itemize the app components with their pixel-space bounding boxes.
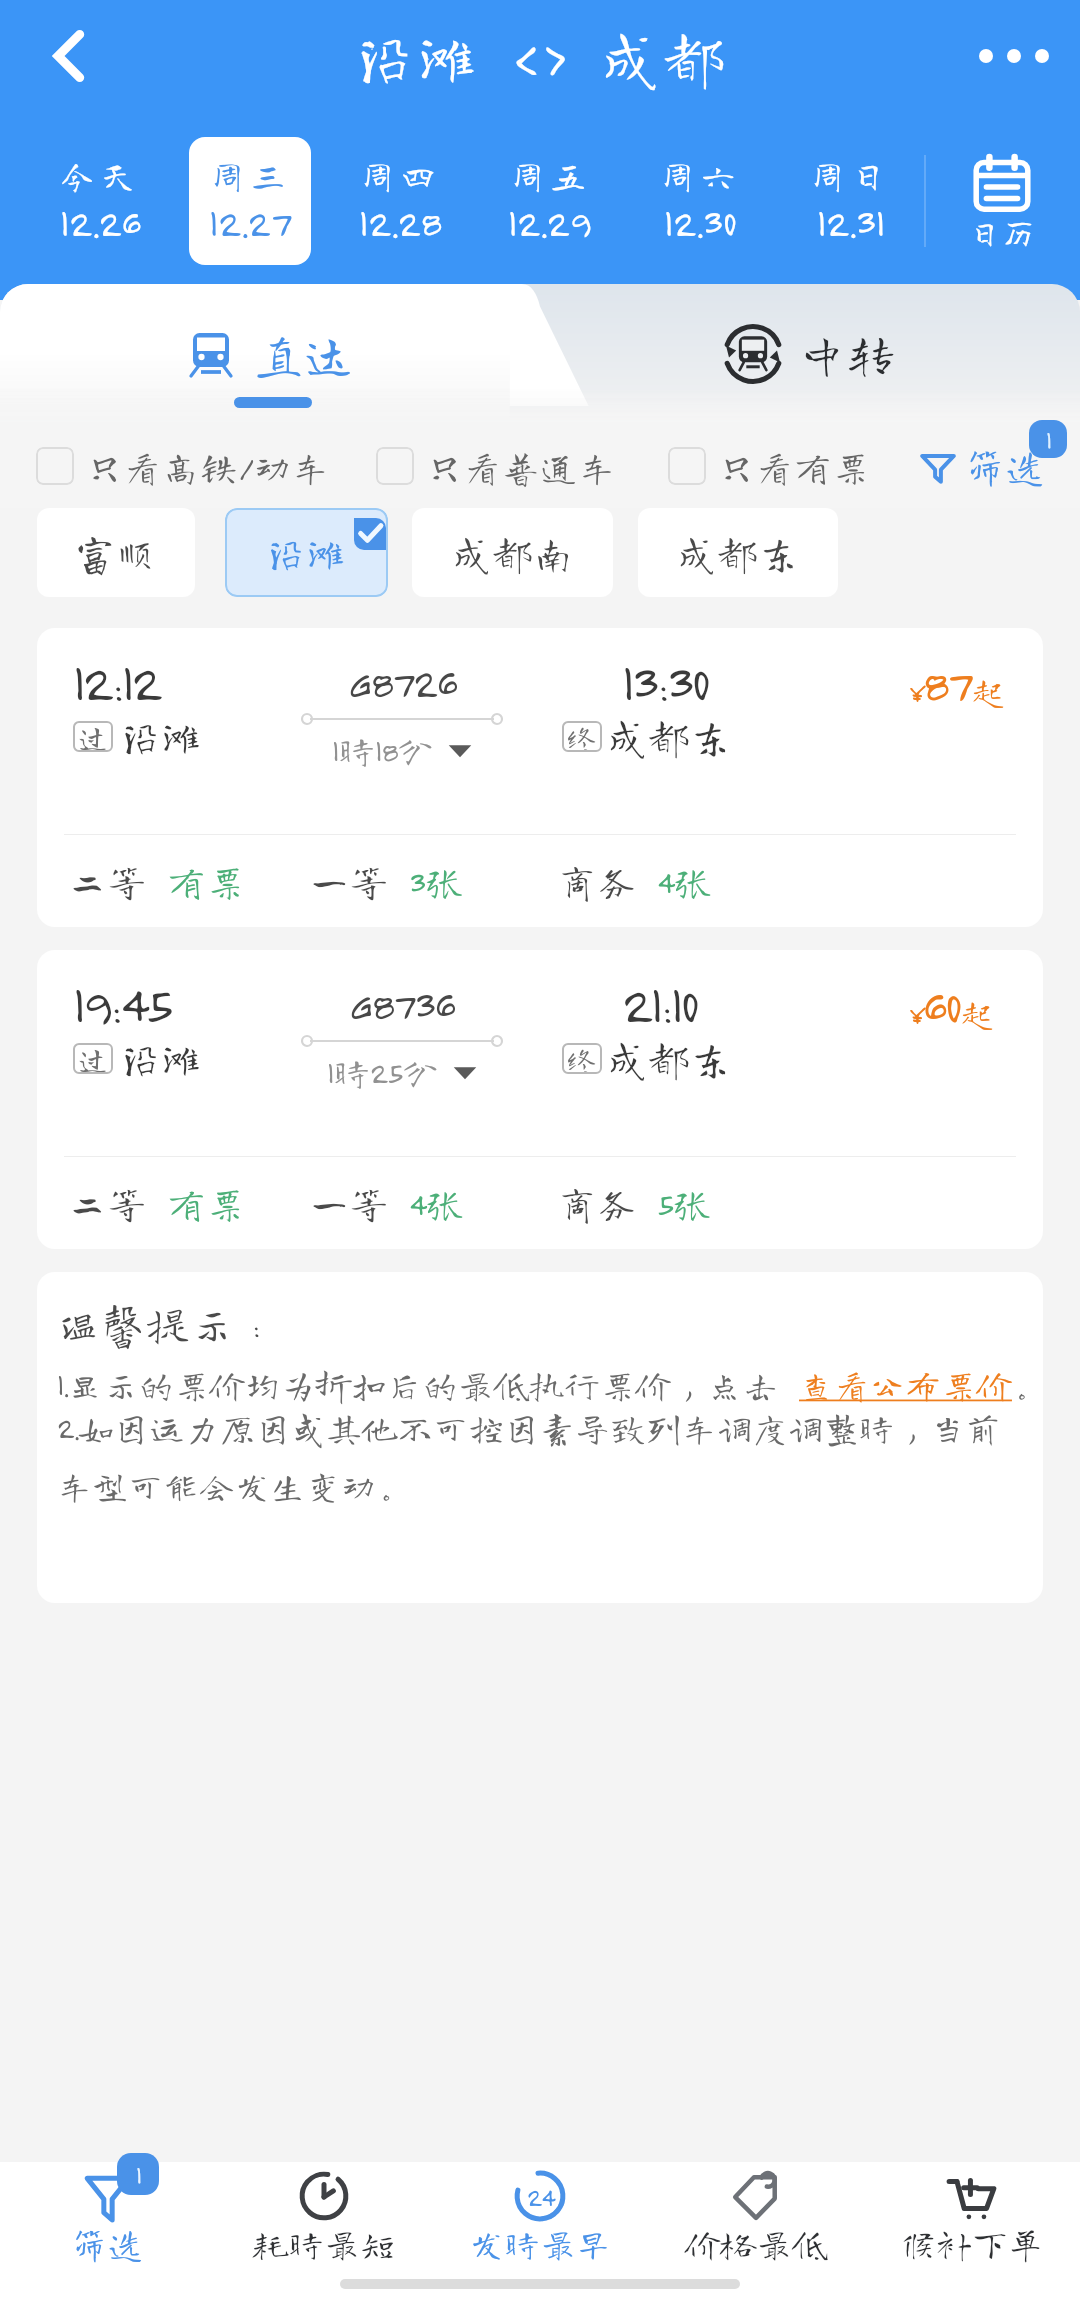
staticText: 4张	[657, 862, 713, 901]
staticText: 日历	[968, 216, 1036, 249]
button[interactable]: 24	[432, 2162, 648, 2268]
button[interactable]: 周四	[339, 137, 461, 265]
staticText: 。	[1012, 1367, 1035, 1402]
staticText: 60	[923, 978, 961, 1034]
staticText: 成都东	[607, 1038, 732, 1079]
button[interactable]: 直达	[0, 294, 540, 414]
button[interactable]: 日历	[936, 137, 1068, 265]
staticText: 成都东	[677, 533, 799, 573]
button[interactable]: 价格最低	[648, 2162, 864, 2268]
staticText: 沿滩	[266, 533, 348, 573]
staticText: G8726	[348, 658, 457, 707]
staticText: 二等	[68, 862, 167, 901]
staticText: 周六	[659, 157, 742, 193]
button[interactable]: 今天	[39, 137, 161, 265]
staticText: 24	[527, 2181, 554, 2211]
staticText: 1	[136, 2160, 141, 2189]
button[interactable]: 只看高铁/动车	[36, 430, 330, 502]
button[interactable]: 周六	[639, 137, 761, 265]
staticText: 耗时最短	[253, 2226, 396, 2261]
staticText: 直达	[255, 330, 354, 378]
button[interactable]: 候补下单	[864, 2162, 1080, 2268]
button[interactable]: 耗时最短	[216, 2162, 432, 2268]
staticText: 4张	[409, 1184, 465, 1223]
staticText: 沿滩	[120, 1038, 203, 1079]
button[interactable]: 1	[0, 2162, 216, 2268]
staticText: 终	[567, 722, 597, 751]
staticText: 起	[972, 675, 1005, 708]
staticText: 12.26	[60, 199, 141, 245]
staticText: 周五	[509, 157, 592, 193]
staticText: 商务	[558, 1184, 657, 1223]
staticText: 成都南	[452, 533, 574, 573]
button[interactable]: 富顺	[37, 508, 195, 597]
staticText: 温馨提示：	[57, 1302, 280, 1345]
button[interactable]: More options	[956, 8, 1072, 104]
staticText: 只看有票	[718, 448, 871, 485]
staticText: 发时最早	[469, 2226, 612, 2261]
staticText: 3张	[409, 862, 465, 901]
staticText: 5张	[657, 1184, 712, 1223]
staticText: 2.如因运力原因或其他不可控因素导致列车调度调整时，当前车型可能会发生变动。	[57, 1410, 1035, 1503]
staticText: 候补下单	[901, 2226, 1044, 2261]
staticText: 12.31	[817, 199, 885, 245]
staticText: 成都东	[607, 716, 732, 757]
staticText: 有票	[167, 1184, 246, 1223]
staticText: 价格最低	[685, 2226, 828, 2261]
staticText: 13:30	[622, 650, 708, 712]
staticText: 沿滩	[120, 716, 203, 757]
staticText: 今天	[59, 157, 142, 193]
staticText: 1.显示的票价均为折扣后的最低执行票价，	[57, 1367, 707, 1402]
button[interactable]: 周五	[489, 137, 611, 265]
staticText: 12.28	[359, 199, 442, 245]
staticText: 一等	[310, 862, 409, 901]
button[interactable]: 19:45	[37, 950, 1043, 1249]
button[interactable]: Back	[22, 8, 118, 104]
staticText: 1	[1046, 425, 1051, 454]
staticText: 有票	[167, 862, 246, 901]
button[interactable]: 12:12	[37, 628, 1043, 927]
button[interactable]: 只看普通车	[376, 430, 617, 502]
button[interactable]: 筛选	[920, 430, 1045, 502]
staticText: ¥	[909, 997, 923, 1030]
staticText: 周日	[809, 157, 892, 193]
staticText: 12:12	[73, 650, 160, 712]
staticText: 12.27	[209, 199, 292, 245]
staticText: 1时25分	[327, 1054, 439, 1090]
staticText: 87	[923, 656, 972, 712]
staticText: 过	[78, 1044, 108, 1073]
staticText: 21:10	[622, 972, 697, 1034]
staticText: 12.29	[508, 199, 592, 245]
staticText: 19:45	[73, 972, 171, 1034]
staticText: 中转	[798, 330, 897, 378]
staticText: 12.30	[664, 199, 737, 245]
staticText: 点击	[707, 1367, 799, 1402]
staticText: 筛选	[966, 447, 1045, 486]
staticText: 查看公布票价	[799, 1367, 1012, 1402]
button[interactable]: 中转	[540, 294, 1080, 414]
staticText: 二等	[68, 1184, 167, 1223]
staticText: 1时18分	[332, 732, 434, 768]
staticText: 只看高铁/动车	[86, 448, 330, 485]
staticText: 富顺	[75, 533, 157, 573]
staticText: 沿滩 <> 成都	[354, 26, 727, 87]
staticText: 周四	[359, 157, 442, 193]
staticText: 商务	[558, 862, 657, 901]
button[interactable]: 周三	[189, 137, 311, 265]
button[interactable]: 成都南	[412, 508, 613, 597]
button[interactable]: 只看有票	[668, 430, 871, 502]
staticText: 起	[961, 997, 994, 1030]
staticText: 周三	[209, 157, 292, 193]
staticText: 终	[567, 1044, 597, 1073]
staticText: 一等	[310, 1184, 409, 1223]
button[interactable]: 沿滩	[225, 508, 388, 597]
staticText: 筛选	[72, 2226, 144, 2261]
button[interactable]: 周日	[789, 137, 911, 265]
staticText: G8736	[349, 980, 455, 1029]
button[interactable]: 成都东	[638, 508, 838, 597]
staticText: 过	[78, 722, 108, 751]
staticText: ¥	[909, 675, 923, 708]
staticText: 只看普通车	[426, 448, 617, 485]
